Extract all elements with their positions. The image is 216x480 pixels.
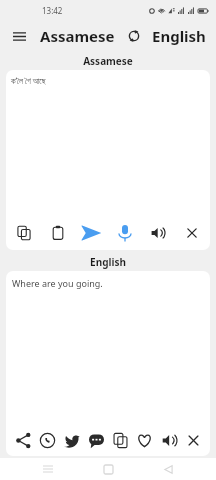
staticText: Assamese — [40, 26, 115, 46]
button[interactable]: Voice input — [113, 221, 137, 245]
staticText: 13:42 — [42, 5, 63, 16]
button[interactable]: Back — [156, 458, 180, 480]
button[interactable]: Translate — [79, 221, 103, 245]
button[interactable]: Home — [96, 458, 120, 480]
staticText: কʼলৈ গৈ আছে — [11, 75, 46, 86]
button[interactable]: Paste — [46, 221, 70, 245]
button[interactable]: Speak — [157, 428, 181, 452]
staticText: Where are you going. — [12, 277, 103, 289]
button[interactable]: Swap languages — [124, 26, 144, 46]
button[interactable]: Speak — [146, 221, 170, 245]
button[interactable]: Favorite — [132, 428, 156, 452]
button[interactable]: Share — [11, 428, 35, 452]
button[interactable]: SMS — [84, 428, 108, 452]
button[interactable]: Twitter — [60, 428, 84, 452]
button[interactable]: English — [150, 26, 208, 46]
button[interactable]: Assamese — [38, 26, 117, 46]
button[interactable]: Recents — [36, 458, 60, 480]
button[interactable]: Menu — [6, 23, 32, 49]
staticText: English — [152, 26, 206, 46]
button[interactable]: Clear — [180, 221, 204, 245]
staticText: Assamese — [83, 54, 133, 68]
staticText: English — [90, 255, 126, 269]
button[interactable]: Copy — [108, 428, 132, 452]
button[interactable]: Copy — [12, 221, 36, 245]
button[interactable]: Clear — [181, 428, 205, 452]
button[interactable]: WhatsApp — [35, 428, 59, 452]
